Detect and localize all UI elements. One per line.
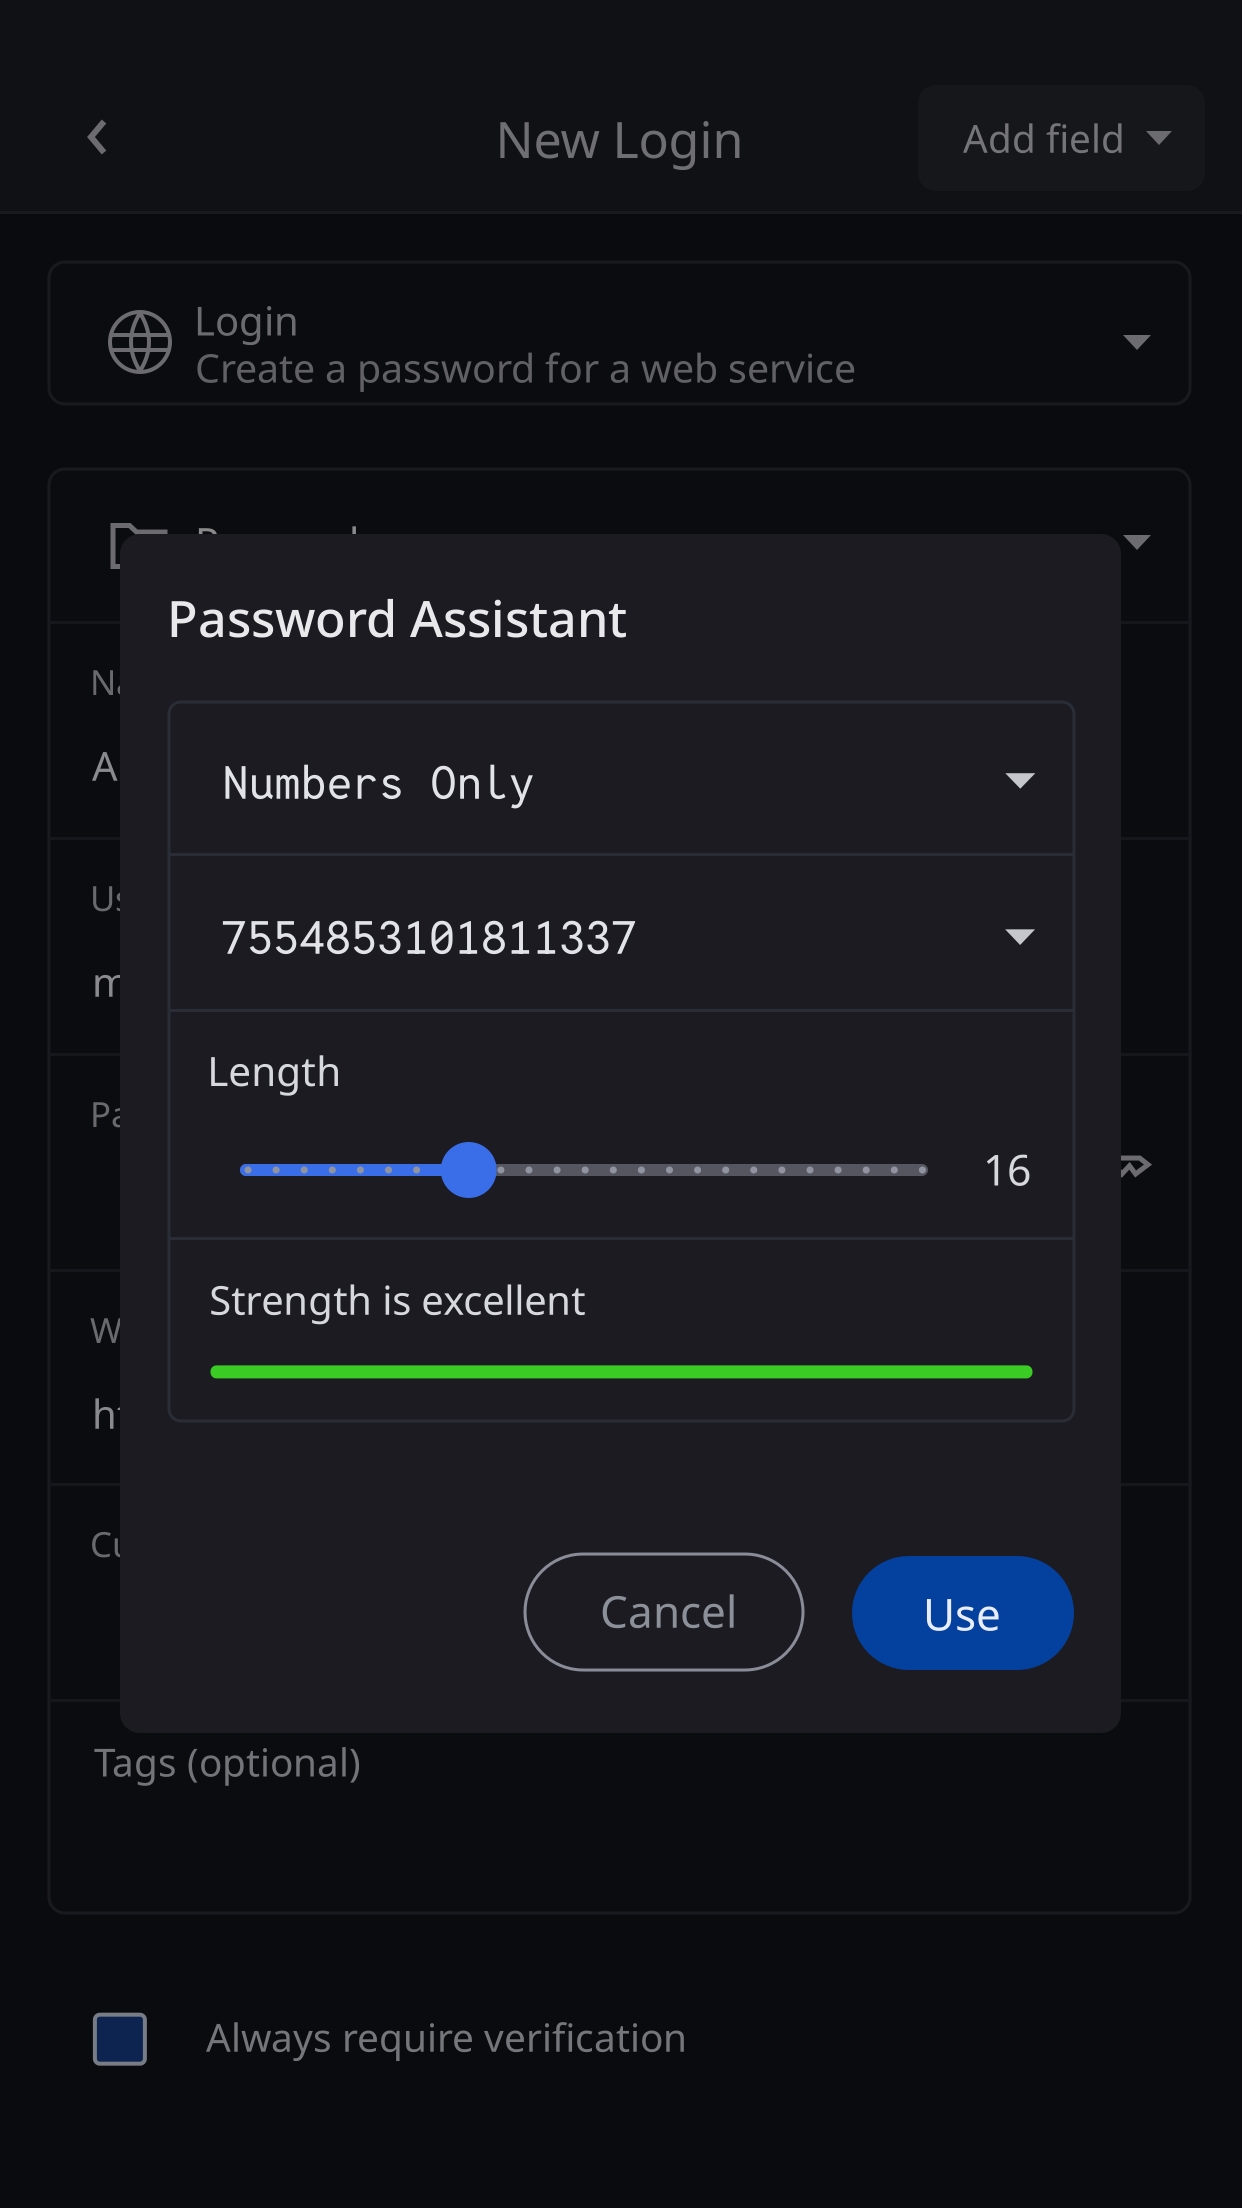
staticText: Username [90, 874, 258, 921]
button[interactable]: Numbers Only [169, 702, 1074, 853]
button[interactable]: Add field [918, 85, 1205, 191]
staticText: Add field [963, 111, 1125, 164]
staticText: Website [90, 1306, 222, 1353]
button[interactable]: Login [49, 262, 1190, 404]
staticText: Add a name [92, 738, 317, 792]
staticText: https:// [92, 1386, 230, 1440]
staticText: New Login [495, 104, 743, 173]
staticText: Create a password for a web service [195, 340, 856, 394]
staticText: Numbers Only [223, 753, 535, 812]
staticText: me@example.com [92, 954, 439, 1008]
button[interactable]: Use [852, 1556, 1074, 1670]
staticText: Length [207, 1043, 341, 1098]
staticText: Tags (optional) [94, 1735, 361, 1788]
staticText: Login [194, 293, 299, 347]
staticText: Password [90, 1090, 247, 1137]
staticText: Cancel [600, 1581, 737, 1641]
staticText: Password Assistant [167, 583, 627, 652]
button[interactable]: Always require verification [93, 2010, 693, 2070]
staticText: Always require verification [206, 2010, 687, 2063]
staticText: Personal [195, 514, 359, 568]
button[interactable]: Back [35, 77, 155, 197]
button[interactable]: 7554853101811337 [169, 856, 1074, 1012]
staticText: Strength is excellent [209, 1272, 585, 1326]
staticText: Name [90, 658, 187, 705]
staticText: Use [923, 1583, 1001, 1643]
staticText: Custom field [90, 1520, 296, 1567]
staticText: 7554853101811337 [221, 908, 637, 967]
button[interactable]: Cancel [525, 1554, 803, 1670]
staticText: 16 [983, 1140, 1031, 1198]
